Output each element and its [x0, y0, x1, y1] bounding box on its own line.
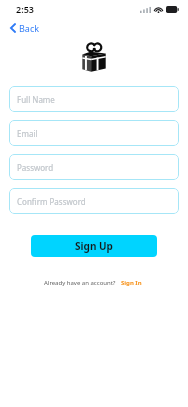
staticText: Confirm Password	[17, 196, 86, 207]
staticText: Password	[17, 162, 54, 173]
button[interactable]: Full Name	[9, 86, 179, 112]
staticText: Sign In	[121, 279, 142, 287]
staticText: 2:53	[16, 3, 34, 15]
button[interactable]: Sign In	[119, 278, 144, 288]
button[interactable]: Sign Up	[31, 235, 157, 257]
other: Gift logo	[81, 43, 107, 74]
button[interactable]: Back	[7, 20, 43, 36]
staticText: Full Name	[17, 94, 55, 105]
staticText: Sign Up	[75, 239, 113, 253]
staticText: Email	[17, 128, 38, 139]
staticText: Already have an account?	[44, 279, 116, 287]
button[interactable]: Confirm Password	[9, 188, 179, 214]
button[interactable]: Password	[9, 154, 179, 180]
button[interactable]: Email	[9, 120, 179, 146]
staticText: Back	[19, 22, 40, 34]
